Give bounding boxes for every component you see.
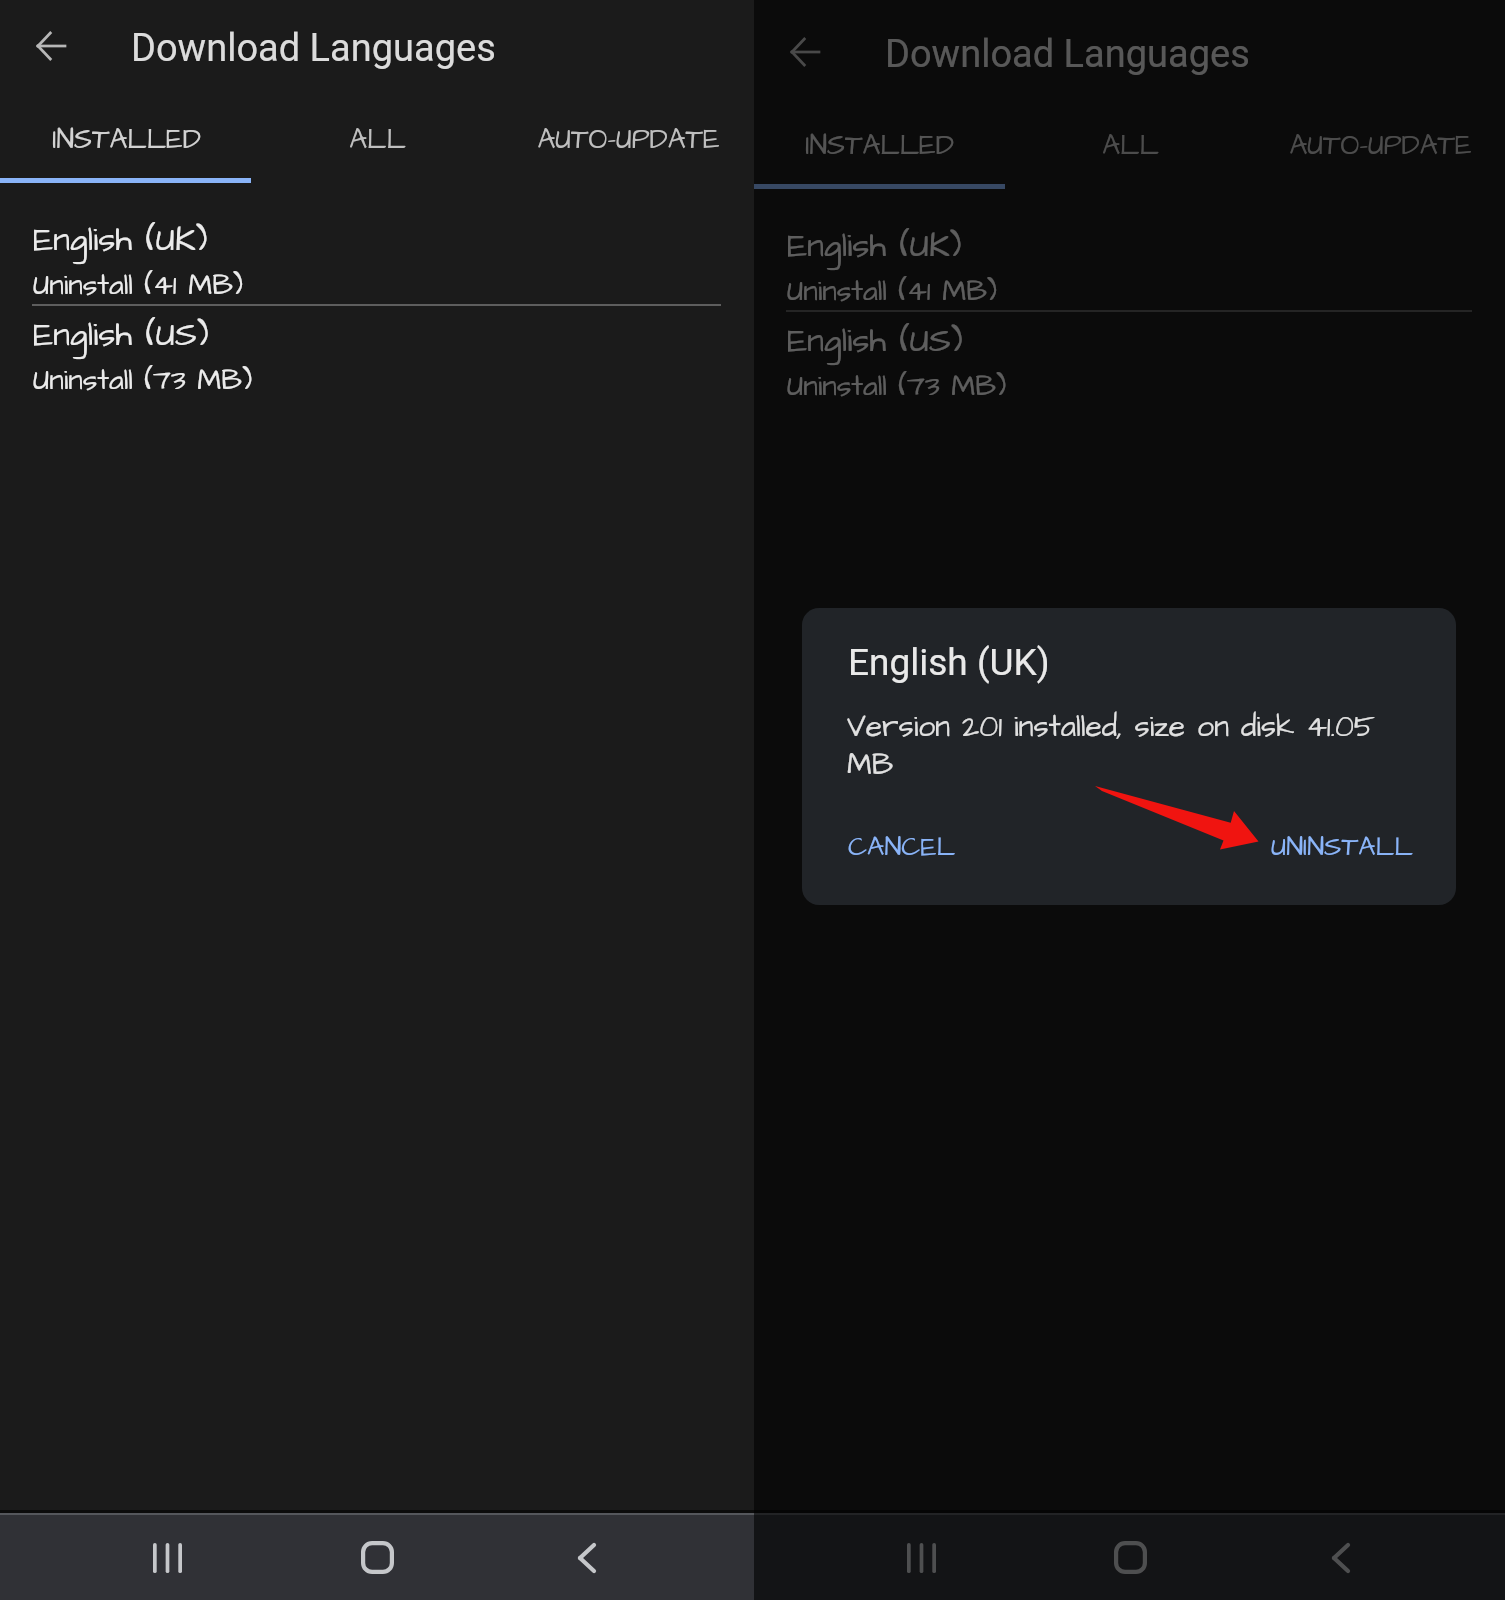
staticText: Download Languages: [885, 32, 1250, 77]
staticText: English (US): [787, 317, 963, 364]
staticText: UNINSTALL: [1271, 828, 1413, 866]
button[interactable]: English (UK): [754, 222, 1505, 317]
staticText: Download Languages: [131, 26, 496, 71]
staticText: Uninstall (41 MB): [787, 271, 997, 311]
button[interactable]: Home: [347, 1515, 407, 1600]
button[interactable]: INSTALLED: [754, 102, 1005, 188]
staticText: INSTALLED: [52, 120, 201, 159]
staticText: ALL: [349, 120, 406, 159]
button[interactable]: Navigate up: [37, 32, 66, 60]
button[interactable]: AUTO-UPDATE: [1255, 102, 1505, 188]
button[interactable]: Home: [1100, 1515, 1160, 1600]
button[interactable]: INSTALLED: [0, 96, 252, 182]
staticText: AUTO-UPDATE: [537, 120, 720, 159]
staticText: English (UK): [33, 216, 208, 263]
staticText: CANCEL: [848, 828, 956, 866]
staticText: Version 201 installed, size on disk 41.0…: [847, 706, 1392, 786]
button[interactable]: Recents: [891, 1515, 951, 1600]
staticText: ALL: [1102, 126, 1159, 165]
button[interactable]: English (US): [0, 311, 754, 406]
staticText: English (UK): [787, 222, 962, 269]
button[interactable]: CANCEL: [836, 818, 968, 876]
staticText: INSTALLED: [805, 126, 954, 165]
button[interactable]: English (UK): [0, 216, 754, 311]
button[interactable]: UNINSTALL: [1259, 818, 1425, 876]
button[interactable]: Back: [557, 1515, 617, 1600]
staticText: English (UK): [848, 641, 1050, 684]
staticText: Uninstall (41 MB): [33, 265, 243, 305]
button[interactable]: ALL: [252, 96, 503, 182]
button[interactable]: ALL: [1005, 102, 1255, 188]
button[interactable]: English (US): [754, 317, 1505, 412]
staticText: AUTO-UPDATE: [1289, 126, 1472, 165]
button[interactable]: AUTO-UPDATE: [503, 96, 754, 182]
staticText: Uninstall (73 MB): [33, 360, 253, 400]
button[interactable]: Back: [1311, 1515, 1371, 1600]
button[interactable]: Navigate up: [791, 38, 820, 66]
staticText: Uninstall (73 MB): [787, 366, 1007, 406]
staticText: English (US): [33, 311, 209, 358]
button[interactable]: Recents: [137, 1515, 197, 1600]
